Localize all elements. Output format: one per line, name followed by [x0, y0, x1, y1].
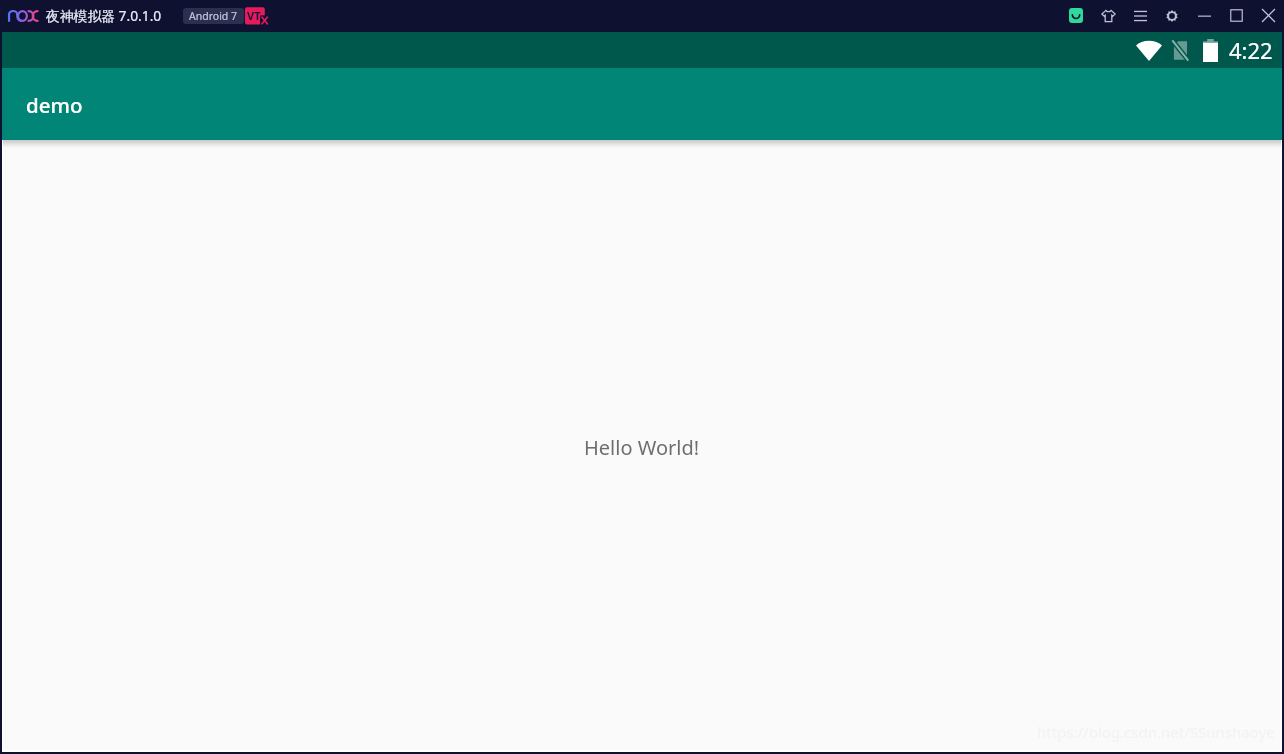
button[interactable]: Menu	[1124, 0, 1156, 31]
button[interactable]: Skins	[1092, 0, 1124, 31]
staticText: 4:22	[1229, 35, 1273, 65]
staticText: Hello World!	[584, 434, 700, 461]
staticText: Android 7	[189, 9, 238, 23]
button[interactable]: App store	[1060, 0, 1092, 31]
button[interactable]: Maximize	[1220, 0, 1252, 31]
staticText: VT	[247, 8, 261, 23]
staticText: demo	[26, 91, 83, 119]
button[interactable]: Android 7	[183, 8, 244, 24]
staticText: 夜神模拟器 7.0.1.0	[46, 6, 162, 25]
button[interactable]: Minimize	[1188, 0, 1220, 31]
button[interactable]: Settings	[1156, 0, 1188, 31]
button[interactable]: Close	[1252, 0, 1284, 31]
button[interactable]: VT enabled	[245, 7, 268, 25]
